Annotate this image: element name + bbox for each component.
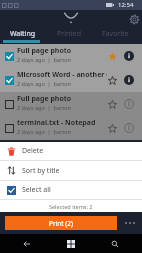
staticText: Printed [57, 29, 82, 39]
staticText: Select all [22, 185, 51, 195]
staticText: Full page photo [17, 94, 72, 104]
button[interactable]: Sort by title [0, 161, 142, 180]
button[interactable]: More options [117, 212, 142, 234]
staticText: Waiting [10, 29, 36, 39]
staticText: 2 days ago | barton [17, 80, 71, 87]
button[interactable]: Back [10, 234, 44, 253]
button[interactable]: Details [124, 51, 134, 61]
staticText: Microsoft Word - another d [17, 70, 107, 80]
button[interactable]: Microsoft Word - another d [0, 68, 142, 92]
button[interactable]: Select all [0, 181, 142, 199]
button[interactable]: Favorite [108, 100, 117, 109]
staticText: Full page photo [17, 46, 72, 56]
button[interactable]: Details [124, 99, 134, 109]
button[interactable]: terminal.txt - Notepad [0, 116, 142, 140]
staticText: terminal.txt - Notepad [17, 118, 96, 128]
button[interactable]: Full page photo [0, 44, 142, 68]
staticText: 2 days ago | barton [17, 128, 71, 135]
staticText: 12:54 [118, 1, 134, 9]
button[interactable]: Home [54, 234, 88, 253]
button[interactable]: Settings [126, 10, 142, 28]
button[interactable]: Favorite [108, 52, 117, 61]
button[interactable]: Details [124, 123, 134, 133]
staticText: Print (2) [49, 219, 73, 228]
button[interactable]: Favorite [92, 28, 138, 40]
button[interactable]: Printed [46, 28, 92, 40]
staticText: 2 days ago | barton [17, 104, 71, 111]
staticText: Sort by title [22, 166, 60, 176]
staticText: 2 days ago | barton [17, 56, 71, 63]
staticText: Favorite [102, 29, 129, 39]
button[interactable]: Search [98, 234, 132, 253]
button[interactable]: Waiting [0, 28, 46, 43]
staticText: Selected items: 2 [49, 203, 93, 210]
button[interactable]: Favorite [108, 124, 117, 133]
button[interactable]: Details [124, 75, 134, 85]
button[interactable]: Delete [0, 142, 142, 160]
staticText: Delete [22, 146, 44, 156]
button[interactable]: Print (2) [5, 216, 117, 230]
button[interactable]: Favorite [108, 76, 117, 85]
button[interactable]: Full page photo [0, 92, 142, 116]
